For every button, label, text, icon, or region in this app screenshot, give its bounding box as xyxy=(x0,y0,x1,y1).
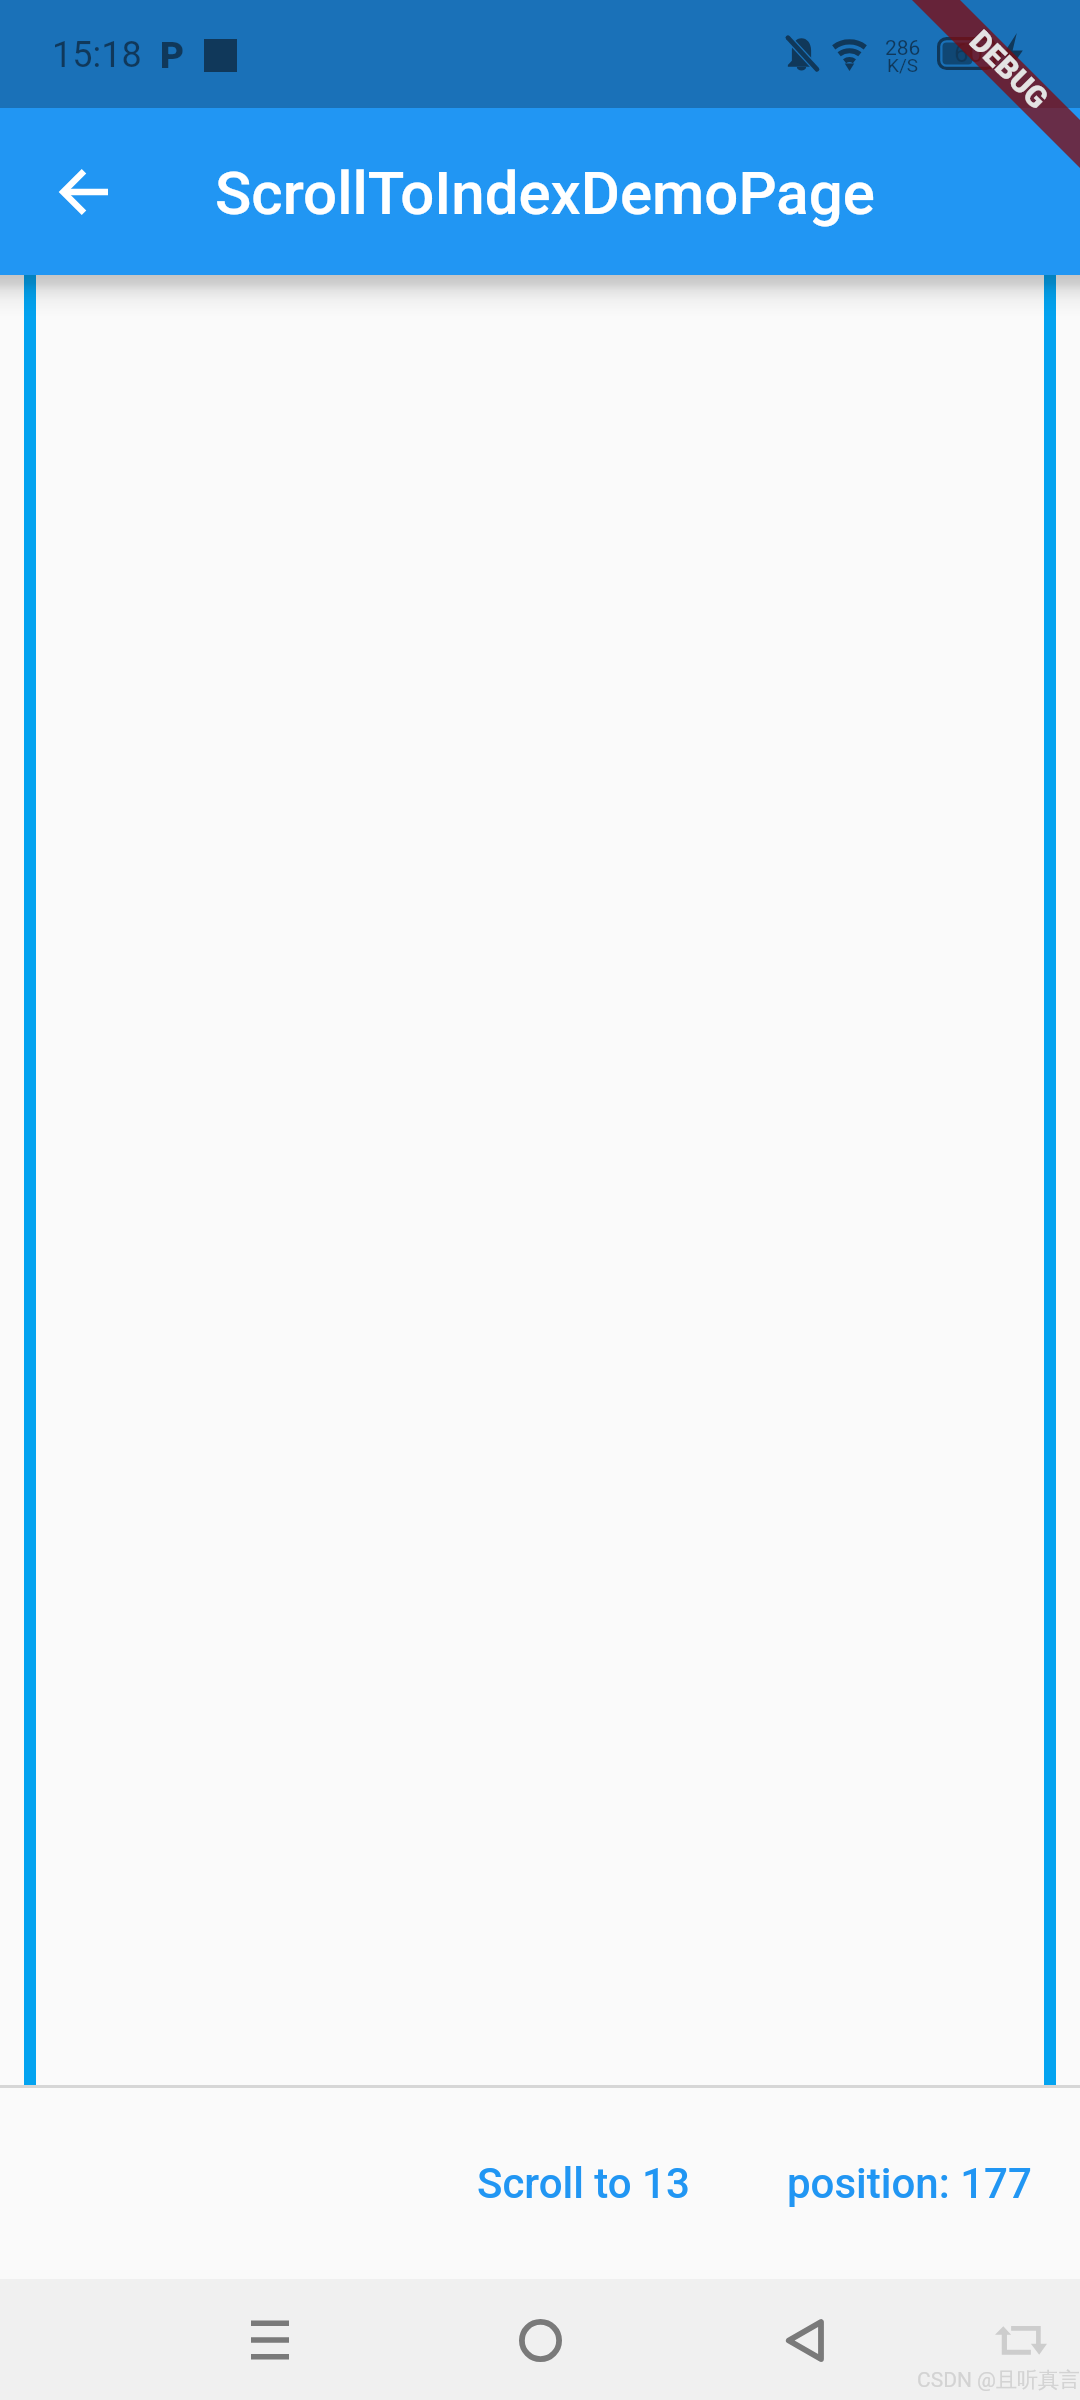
button[interactable]: Recents xyxy=(225,2295,315,2385)
staticText: DEBUG xyxy=(963,23,1055,116)
staticText: ScrollToIndexDemoPage xyxy=(215,158,875,228)
staticText: 15:18 xyxy=(52,34,142,76)
staticText: P xyxy=(160,34,185,77)
button[interactable]: Home xyxy=(495,2295,585,2385)
staticText: position: 177 xyxy=(787,2159,1032,2208)
staticText: CSDN @且听真言 xyxy=(917,2367,1080,2393)
button[interactable]: Back xyxy=(36,144,132,240)
button[interactable]: Scroll to 13 xyxy=(467,2143,700,2224)
staticText: 60 xyxy=(954,38,984,68)
staticText: 286 xyxy=(885,36,921,61)
staticText: K/S xyxy=(887,54,919,76)
button[interactable]: Rotate screen xyxy=(976,2295,1066,2385)
button[interactable]: position: 177 xyxy=(777,2143,1042,2224)
button[interactable]: Back xyxy=(760,2295,850,2385)
staticText: Scroll to 13 xyxy=(477,2159,690,2208)
